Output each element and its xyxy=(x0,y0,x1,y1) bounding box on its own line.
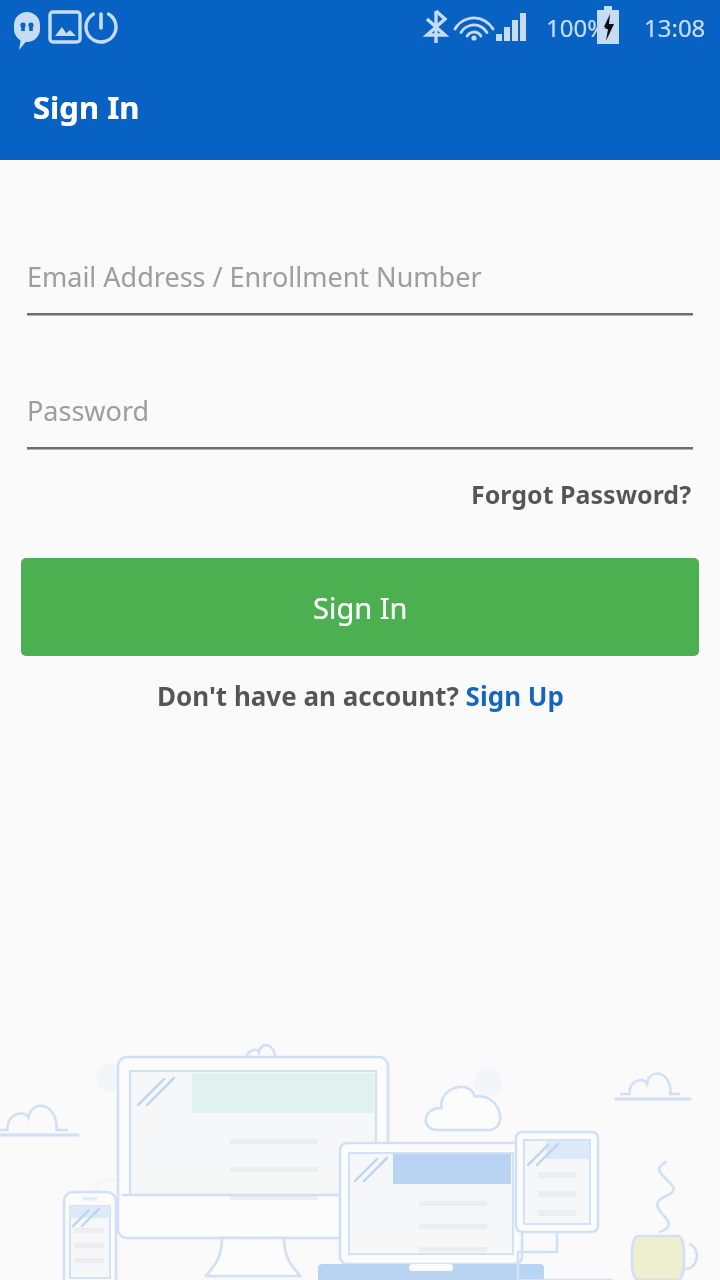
staticText: 13:08 xyxy=(644,11,706,44)
staticText: Email Address / Enrollment Number xyxy=(27,258,482,295)
button[interactable]: Email Address / Enrollment Number xyxy=(27,258,693,316)
staticText: Sign In xyxy=(33,86,140,128)
staticText: 100% xyxy=(546,11,608,44)
staticText: Sign In xyxy=(313,588,408,627)
button[interactable]: Forgot Password? xyxy=(467,471,696,517)
staticText: Forgot Password? xyxy=(471,477,692,511)
staticText: Password xyxy=(27,392,150,429)
button[interactable]: Don't have an account? Sign Up xyxy=(149,670,572,721)
button[interactable]: Password xyxy=(27,392,693,450)
button[interactable]: Sign In xyxy=(21,558,699,656)
staticText: Don't have an account? Sign Up xyxy=(157,678,564,713)
